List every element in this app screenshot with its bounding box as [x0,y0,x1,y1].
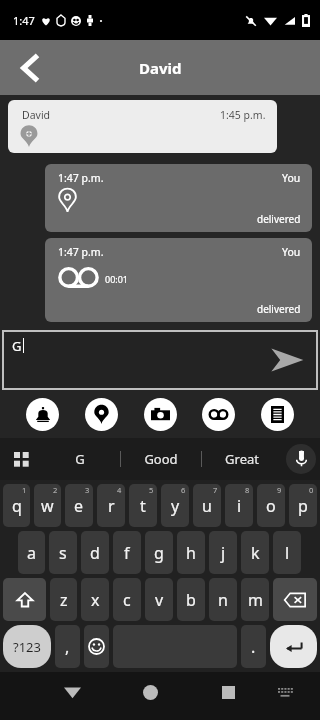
staticText: 00:01 [105,273,129,285]
staticText: G [75,450,85,468]
button[interactable]: c [113,578,141,621]
button[interactable]: 1:47 p.m. [45,238,312,322]
button[interactable]: David [8,100,277,153]
button[interactable]: . [241,625,266,668]
staticText: 8 [245,485,250,495]
staticText: j [221,542,226,564]
button[interactable]: Back [8,46,52,90]
button[interactable]: x [81,578,109,621]
staticText: , [65,636,70,658]
button[interactable]: m [241,578,269,621]
button[interactable]: Send [266,339,308,381]
staticText: . [251,636,256,658]
staticText: o [266,495,276,517]
button[interactable]: q [3,484,30,527]
button[interactable]: f [113,531,141,574]
button[interactable]: Notes [261,398,294,431]
button[interactable]: Hide keyboard [265,672,305,712]
staticText: c [123,589,131,611]
staticText: d [90,542,100,564]
staticText: 1:47 p.m. [58,245,104,259]
button[interactable]: Voice input [286,444,316,474]
button[interactable]: t [129,484,157,527]
button[interactable]: Backspace [273,578,317,621]
staticText: e [74,495,84,517]
staticText: 4 [117,485,122,495]
button[interactable]: s [49,531,77,574]
staticText: 5 [149,485,154,495]
button[interactable]: Emoji [84,625,109,668]
staticText: 9 [277,485,282,495]
staticText: p [298,495,308,517]
button[interactable]: i [225,484,253,527]
button[interactable]: , [55,625,80,668]
staticText: y [171,495,180,517]
button[interactable]: Great [202,438,282,480]
staticText: u [202,495,212,517]
staticText: h [186,542,196,564]
staticText: a [27,542,36,564]
staticText: ?123 [13,638,41,656]
button[interactable]: Enter [270,625,317,668]
button[interactable]: Good [121,438,201,480]
button[interactable]: Shift [3,578,46,621]
button[interactable]: ?123 [3,625,51,668]
button[interactable]: l [273,531,301,574]
button[interactable]: Home [130,672,170,712]
button[interactable]: Recent apps [208,672,248,712]
button[interactable]: j [209,531,237,574]
button[interactable]: h [177,531,205,574]
button[interactable]: p [289,484,317,527]
button[interactable]: o [257,484,285,527]
button[interactable]: n [209,578,237,621]
button[interactable]: w [34,484,61,527]
button[interactable]: 1:47 p.m. [45,164,312,232]
staticText: delivered [257,212,301,226]
staticText: q [12,495,22,517]
button[interactable]: a [18,531,45,574]
staticText: 6 [181,485,186,495]
staticText: Good [144,450,178,468]
staticText: You [282,245,301,259]
staticText: 1:47 [13,13,35,28]
button[interactable]: z [50,578,77,621]
button[interactable]: d [81,531,109,574]
button[interactable]: r [97,484,125,527]
staticText: s [59,542,67,564]
staticText: x [91,589,100,611]
staticText: i [237,495,242,517]
staticText: delivered [257,302,301,316]
staticText: 3 [85,485,90,495]
button[interactable]: Voice message [202,398,235,431]
staticText: G [12,337,22,355]
button[interactable]: Location [85,398,118,431]
staticText: David [139,58,182,78]
button[interactable]: u [193,484,221,527]
button[interactable]: Back [52,672,92,712]
button[interactable]: Toolbar [4,442,38,476]
staticText: 1 [22,485,27,495]
button[interactable]: e [65,484,93,527]
button[interactable]: Alarm [26,398,59,431]
button[interactable]: g [145,531,173,574]
button[interactable]: y [161,484,189,527]
staticText: You [282,171,301,185]
button[interactable]: b [177,578,205,621]
staticText: m [248,589,263,611]
button[interactable]: Camera [144,398,177,431]
staticText: Great [225,450,259,468]
button[interactable]: G [4,332,316,388]
staticText: 7 [213,485,218,495]
staticText: 2 [53,485,58,495]
staticText: v [155,589,164,611]
staticText: 0 [309,485,314,495]
staticText: r [108,495,115,517]
staticText: g [154,542,164,564]
staticText: b [186,589,196,611]
staticText: 1:45 p.m. [220,108,266,122]
button[interactable]: k [241,531,269,574]
staticText: l [285,542,290,564]
button[interactable]: G [40,438,120,480]
button[interactable]: v [145,578,173,621]
